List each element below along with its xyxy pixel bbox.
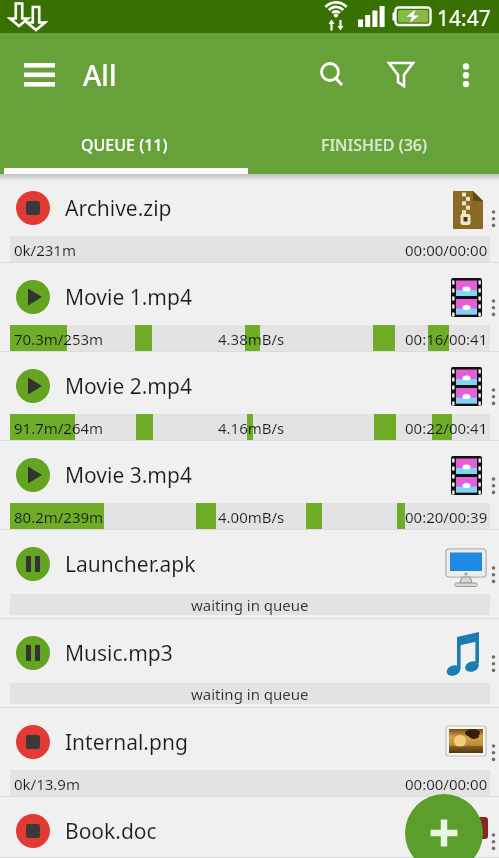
staticText: 00:00/00:00: [405, 240, 488, 260]
button[interactable]: Archive.zip: [0, 174, 499, 263]
staticText: 14:47: [437, 4, 491, 33]
button[interactable]: [14, 53, 66, 97]
button[interactable]: Movie 3.mp4: [0, 441, 499, 530]
button[interactable]: [16, 814, 50, 848]
staticText: 0k/13.9m: [14, 774, 80, 794]
button[interactable]: FINISHED (36): [249, 116, 499, 174]
staticText: Movie 1.mp4: [65, 283, 192, 312]
staticText: All: [83, 56, 117, 94]
button[interactable]: [16, 547, 50, 581]
staticText: 91.7m/264m: [14, 418, 104, 438]
staticText: 0k/231m: [14, 240, 76, 260]
staticText: Movie 3.mp4: [65, 461, 192, 490]
staticText: Archive.zip: [65, 194, 172, 223]
button[interactable]: [16, 280, 50, 314]
staticText: QUEUE (11): [81, 134, 168, 156]
staticText: 00:20/00:39: [405, 507, 488, 527]
staticText: 80.2m/239m: [14, 507, 104, 527]
button[interactable]: Launcher.apk: [0, 530, 499, 619]
staticText: 00:16/00:41: [405, 329, 488, 349]
button[interactable]: [16, 636, 50, 670]
staticText: 4.00mB/s: [218, 507, 285, 527]
button[interactable]: [16, 458, 50, 492]
staticText: FINISHED (36): [321, 134, 428, 156]
staticText: waiting in queue: [191, 595, 309, 615]
button[interactable]: [16, 725, 50, 759]
staticText: 00:22/00:41: [405, 418, 488, 438]
button[interactable]: [16, 191, 50, 225]
button[interactable]: Internal.png: [0, 708, 499, 797]
staticText: waiting in queue: [191, 684, 309, 704]
staticText: Movie 2.mp4: [65, 372, 192, 401]
button[interactable]: [375, 47, 427, 103]
button[interactable]: QUEUE (11): [0, 116, 249, 174]
button[interactable]: Music.mp3: [0, 619, 499, 708]
button[interactable]: Book.doc: [0, 797, 499, 858]
staticText: 70.3m/253m: [14, 329, 104, 349]
button[interactable]: Movie 2.mp4: [0, 352, 499, 441]
button[interactable]: Movie 1.mp4: [0, 263, 499, 352]
button[interactable]: [16, 369, 50, 403]
staticText: Music.mp3: [65, 639, 173, 668]
staticText: Launcher.apk: [65, 550, 196, 579]
staticText: 4.16mB/s: [218, 418, 285, 438]
staticText: Book.doc: [65, 817, 157, 846]
button[interactable]: [444, 47, 488, 103]
button[interactable]: [306, 47, 358, 103]
staticText: Internal.png: [65, 728, 188, 757]
staticText: 4.38mB/s: [218, 329, 285, 349]
staticText: 00:00/00:00: [405, 774, 488, 794]
button[interactable]: [405, 794, 483, 858]
